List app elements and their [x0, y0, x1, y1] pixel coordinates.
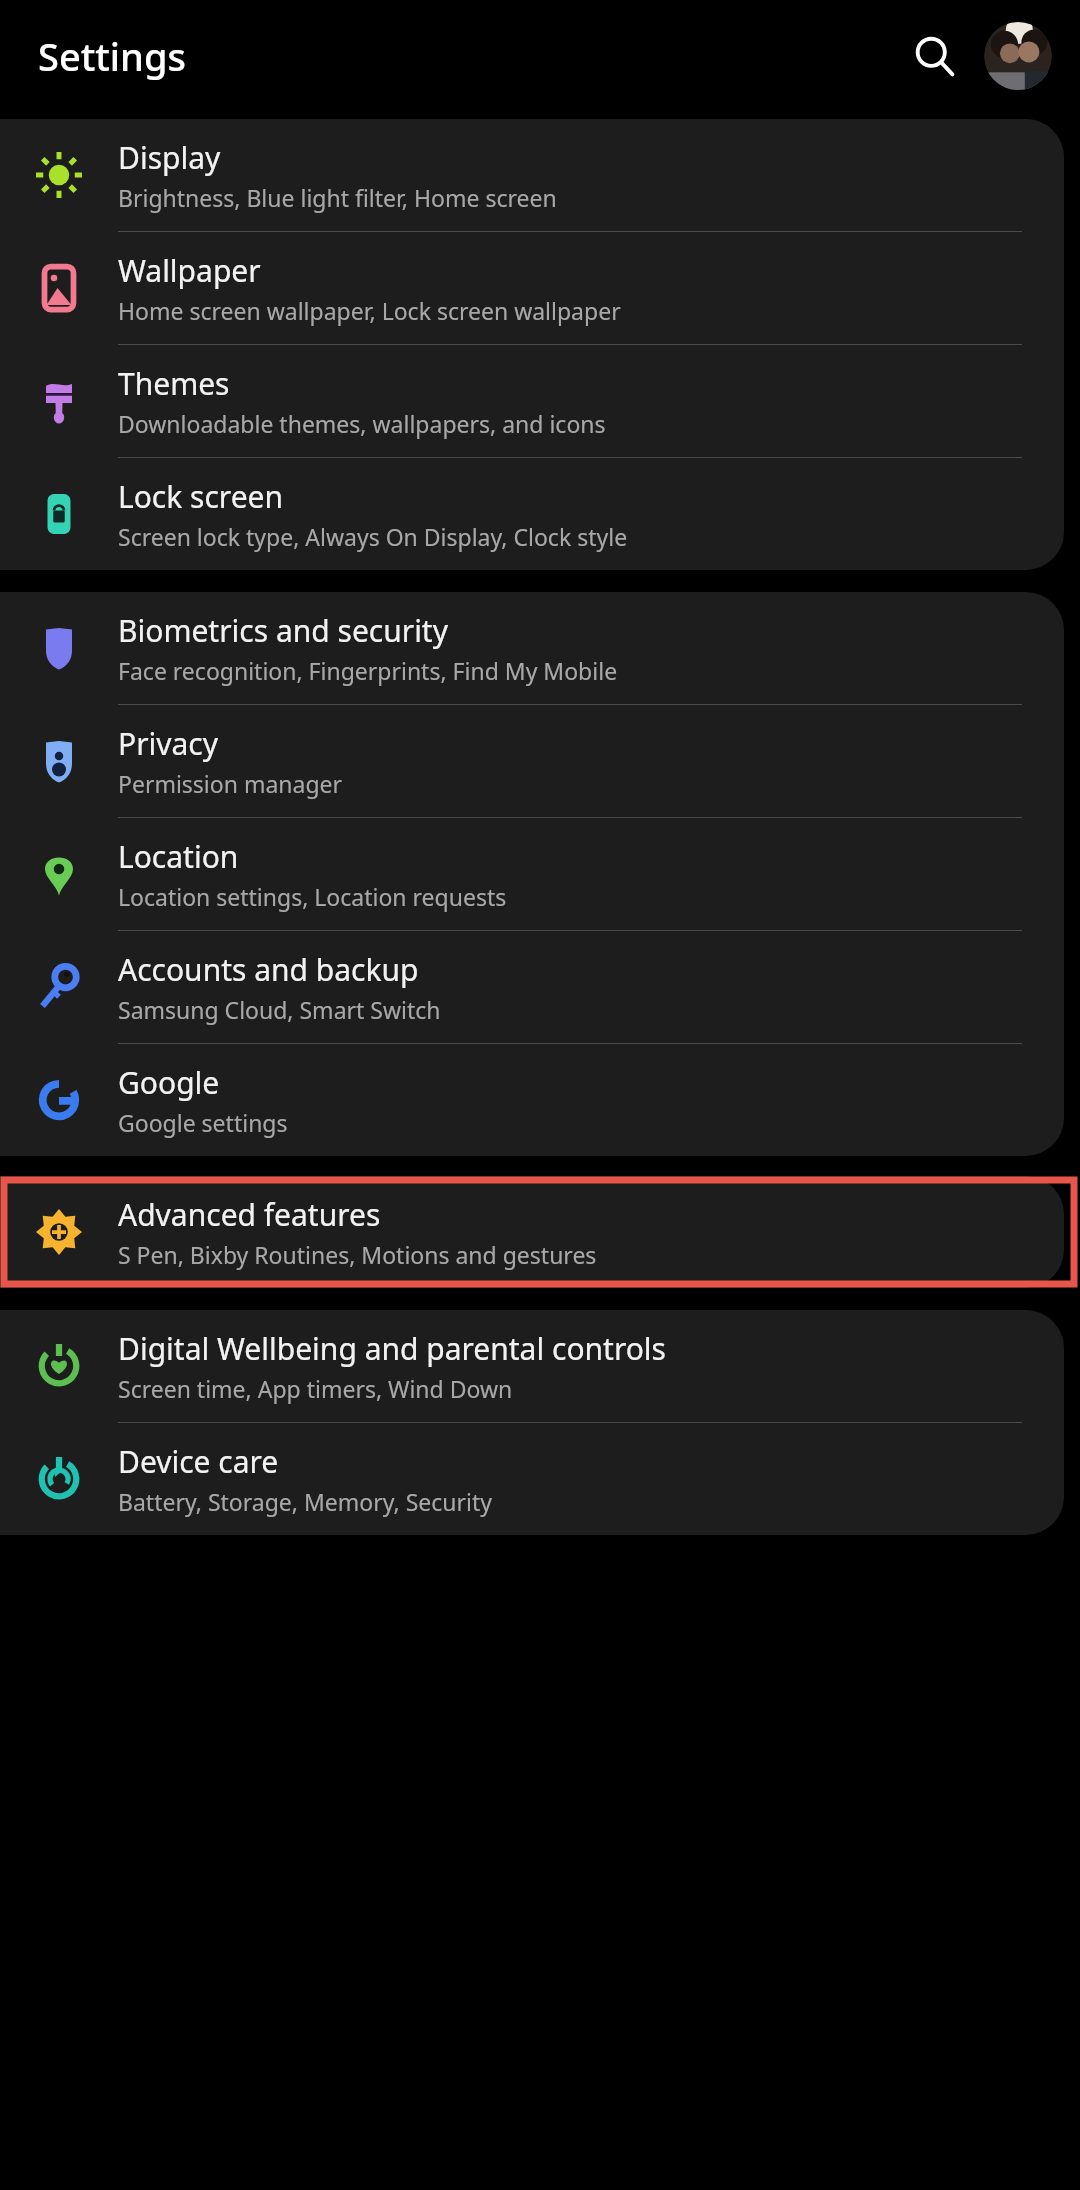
- button[interactable]: Lock screen: [0, 458, 1064, 570]
- staticText: Device care: [118, 1441, 279, 1482]
- button[interactable]: Search: [898, 20, 970, 92]
- staticText: Digital Wellbeing and parental controls: [118, 1328, 666, 1369]
- staticText: Biometrics and security: [118, 610, 448, 651]
- staticText: Google settings: [118, 1107, 288, 1138]
- button[interactable]: Biometrics and security: [0, 592, 1064, 705]
- button[interactable]: Google: [0, 1044, 1064, 1156]
- button[interactable]: Wallpaper: [0, 232, 1064, 345]
- staticText: Location: [118, 836, 239, 877]
- staticText: Advanced features: [118, 1194, 381, 1235]
- button[interactable]: Advanced features: [0, 1176, 1064, 1288]
- staticText: Accounts and backup: [118, 949, 419, 990]
- staticText: Google: [118, 1062, 220, 1103]
- button[interactable]: Profile: [984, 22, 1052, 90]
- staticText: Privacy: [118, 723, 219, 764]
- staticText: Samsung Cloud, Smart Switch: [118, 994, 441, 1025]
- staticText: S Pen, Bixby Routines, Motions and gestu…: [118, 1239, 597, 1270]
- button[interactable]: Digital Wellbeing and parental controls: [0, 1310, 1064, 1423]
- staticText: Downloadable themes, wallpapers, and ico…: [118, 408, 606, 439]
- staticText: Permission manager: [118, 768, 343, 799]
- button[interactable]: Device care: [0, 1423, 1064, 1535]
- staticText: Face recognition, Fingerprints, Find My …: [118, 655, 618, 686]
- staticText: Battery, Storage, Memory, Security: [118, 1486, 492, 1517]
- button[interactable]: Themes: [0, 345, 1064, 458]
- button[interactable]: Accounts and backup: [0, 931, 1064, 1044]
- staticText: Location settings, Location requests: [118, 881, 507, 912]
- button[interactable]: Display: [0, 119, 1064, 232]
- button[interactable]: Privacy: [0, 705, 1064, 818]
- staticText: Settings: [38, 30, 186, 82]
- staticText: Screen time, App timers, Wind Down: [118, 1373, 513, 1404]
- staticText: Lock screen: [118, 476, 284, 517]
- staticText: Wallpaper: [118, 250, 261, 291]
- staticText: Screen lock type, Always On Display, Clo…: [118, 521, 628, 552]
- staticText: Brightness, Blue light filter, Home scre…: [118, 182, 557, 213]
- staticText: Themes: [118, 363, 230, 404]
- staticText: Home screen wallpaper, Lock screen wallp…: [118, 295, 621, 326]
- button[interactable]: Location: [0, 818, 1064, 931]
- staticText: Display: [118, 137, 221, 178]
